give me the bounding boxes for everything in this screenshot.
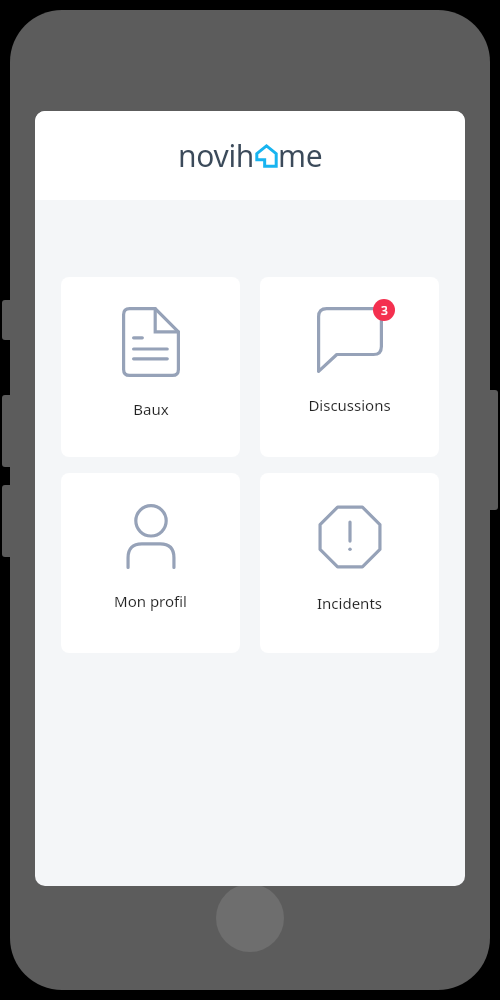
button[interactable]: Incidents bbox=[260, 473, 439, 653]
staticText: Discussions bbox=[308, 395, 391, 415]
staticText: Baux bbox=[133, 399, 169, 419]
staticText: 3 bbox=[381, 302, 388, 318]
button[interactable]: Leases bbox=[61, 277, 240, 457]
other: Incidents bbox=[316, 503, 384, 571]
staticText: Incidents bbox=[317, 593, 382, 613]
other: Leases bbox=[122, 307, 180, 377]
button[interactable]: My profile bbox=[61, 473, 240, 653]
staticText: Mon profil bbox=[114, 591, 187, 611]
other: Discussions bbox=[317, 307, 383, 373]
other: My profile bbox=[120, 503, 182, 569]
button[interactable]: Discussions bbox=[260, 277, 439, 457]
staticText: novih bbox=[178, 135, 255, 176]
staticText: me bbox=[278, 135, 323, 176]
